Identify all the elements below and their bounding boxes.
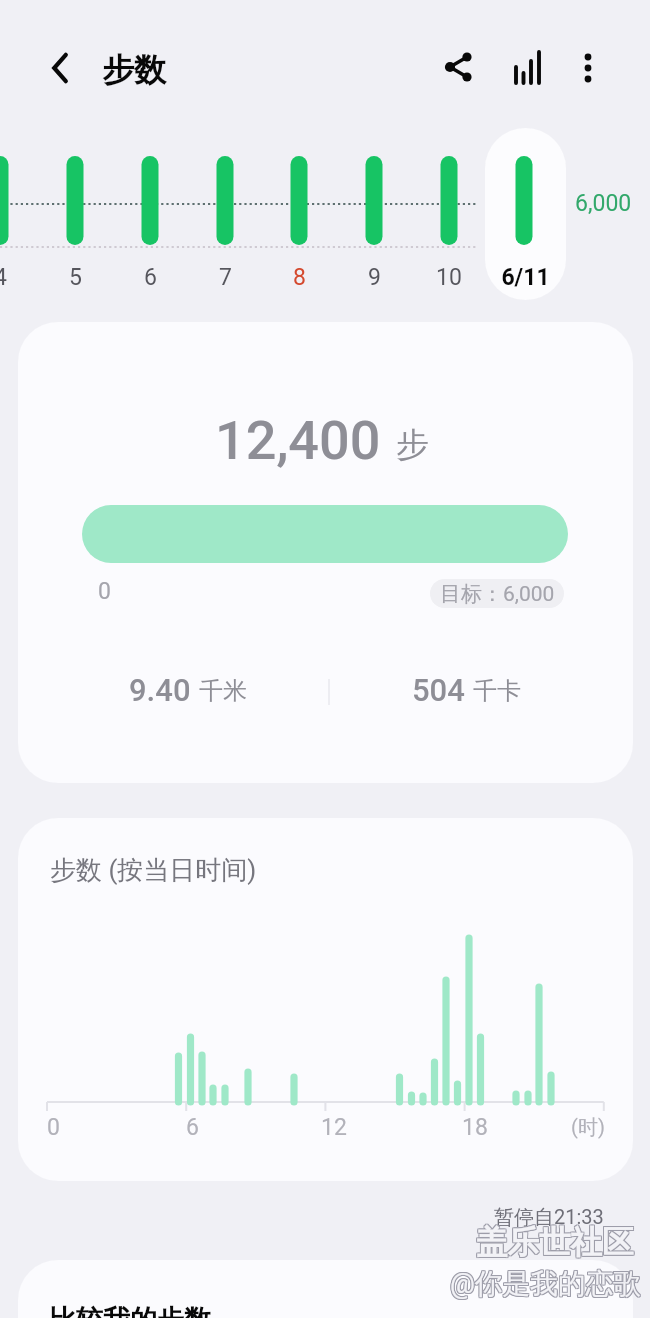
staticText: 6/11 — [501, 264, 550, 291]
staticText: 9 — [368, 264, 381, 291]
staticText: 盖乐世社区 — [475, 1223, 633, 1263]
staticText: 暂停自21:33 — [494, 1205, 604, 1230]
staticText: 6 — [186, 1114, 199, 1141]
button[interactable]: 步数 (按当日时间) — [18, 818, 633, 1181]
staticText: 5 — [69, 264, 82, 291]
staticText: 盖乐世社区 — [477, 1222, 635, 1262]
button[interactable]: Selected day 6/11 — [485, 128, 566, 300]
staticText: @你是我的恋歌 — [449, 1267, 640, 1302]
button[interactable]: Share — [427, 36, 489, 98]
staticText: 步数 (按当日时间) — [50, 854, 257, 887]
staticText: 18 — [462, 1114, 488, 1141]
staticText: @你是我的恋歌 — [450, 1266, 641, 1301]
staticText: 盖乐世社区 — [476, 1224, 634, 1264]
staticText: 步 — [396, 424, 429, 466]
staticText: 6,000 — [575, 190, 632, 217]
staticText: 盖乐世社区 — [477, 1223, 635, 1263]
staticText: 7 — [219, 264, 232, 291]
staticText: (时) — [571, 1115, 605, 1140]
staticText: @你是我的恋歌 — [450, 1267, 641, 1302]
staticText: 9.40 — [129, 672, 191, 708]
staticText: 盖乐世社区 — [477, 1224, 635, 1264]
staticText: @你是我的恋歌 — [451, 1266, 642, 1301]
staticText: @你是我的恋歌 — [451, 1267, 642, 1302]
button[interactable]: 比较我的步数 — [18, 1260, 633, 1318]
staticText: 盖乐世社区 — [476, 1222, 634, 1262]
staticText: 10 — [436, 264, 462, 291]
staticText: 目标：6,000 — [440, 581, 555, 607]
staticText: 千卡 — [473, 676, 521, 706]
staticText: 504 — [412, 672, 465, 708]
button[interactable]: More options — [557, 37, 619, 99]
staticText: 千米 — [199, 676, 247, 706]
button[interactable]: Back — [26, 34, 94, 102]
button[interactable]: Statistics — [497, 37, 559, 99]
staticText: 0 — [98, 578, 111, 605]
staticText: 0 — [47, 1114, 60, 1141]
staticText: 步数 — [102, 50, 166, 90]
staticText: 12 — [321, 1114, 347, 1141]
button[interactable]: 12,400 — [18, 322, 633, 783]
staticText: @你是我的恋歌 — [451, 1265, 642, 1300]
staticText: @你是我的恋歌 — [450, 1265, 641, 1300]
staticText: 6 — [144, 264, 157, 291]
staticText: 8 — [293, 264, 306, 291]
staticText: @你是我的恋歌 — [449, 1266, 640, 1301]
staticText: 盖乐世社区 — [475, 1224, 633, 1264]
staticText: 4 — [0, 264, 7, 291]
staticText: 盖乐世社区 — [476, 1223, 634, 1263]
staticText: @你是我的恋歌 — [449, 1265, 640, 1300]
staticText: 12,400 — [215, 409, 381, 472]
staticText: 比较我的步数 — [49, 1303, 211, 1318]
staticText: 盖乐世社区 — [475, 1222, 633, 1262]
